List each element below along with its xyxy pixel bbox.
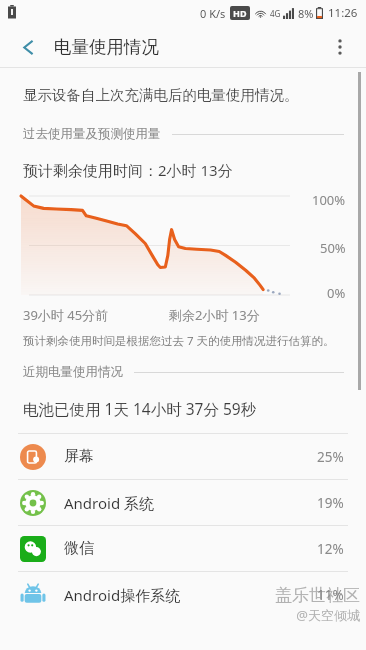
staticText: 预计剩余使用时间：2小时 13分 bbox=[23, 160, 233, 180]
staticText: 盖乐世社区 bbox=[275, 585, 360, 606]
staticText: 25% bbox=[317, 448, 344, 466]
staticText: @天空倾城 bbox=[296, 606, 360, 624]
staticText: 0 K/s bbox=[200, 6, 226, 21]
button[interactable]: More options bbox=[320, 27, 360, 67]
staticText: 预计剩余使用时间是根据您过去 7 天的使用情况进行估算的。 bbox=[23, 333, 335, 349]
staticText: 100% bbox=[312, 191, 346, 209]
staticText: 8% bbox=[298, 6, 314, 21]
staticText: 0% bbox=[327, 284, 346, 302]
staticText: Android 系统 bbox=[64, 493, 317, 513]
staticText: 39小时 45分前 bbox=[23, 306, 109, 324]
staticText: 11% bbox=[317, 586, 344, 604]
staticText: 剩余2小时 13分 bbox=[169, 306, 260, 324]
staticText: 近期电量使用情况 bbox=[23, 364, 123, 380]
staticText: 19% bbox=[317, 494, 344, 512]
staticText: 12% bbox=[317, 540, 344, 558]
staticText: 过去使用量及预测使用量 bbox=[23, 126, 161, 142]
staticText: 显示设备自上次充满电后的电量使用情况。 bbox=[23, 86, 299, 104]
staticText: 电量使用情况 bbox=[54, 36, 159, 58]
staticText: 11:26 bbox=[328, 5, 358, 21]
staticText: HD bbox=[233, 7, 247, 19]
staticText: 微信 bbox=[64, 539, 317, 558]
button[interactable]: Back bbox=[8, 27, 48, 67]
staticText: Android操作系统 bbox=[64, 585, 317, 605]
staticText: 4G bbox=[270, 8, 281, 19]
button[interactable]: Android 系统 bbox=[0, 480, 366, 525]
staticText: 屏幕 bbox=[64, 447, 317, 466]
button[interactable]: Android操作系统 bbox=[0, 572, 366, 617]
button[interactable]: 屏幕 bbox=[0, 434, 366, 479]
staticText: 50% bbox=[320, 239, 346, 257]
button[interactable]: 微信 bbox=[0, 526, 366, 571]
staticText: 电池已使用 1天 14小时 37分 59秒 bbox=[23, 398, 257, 419]
